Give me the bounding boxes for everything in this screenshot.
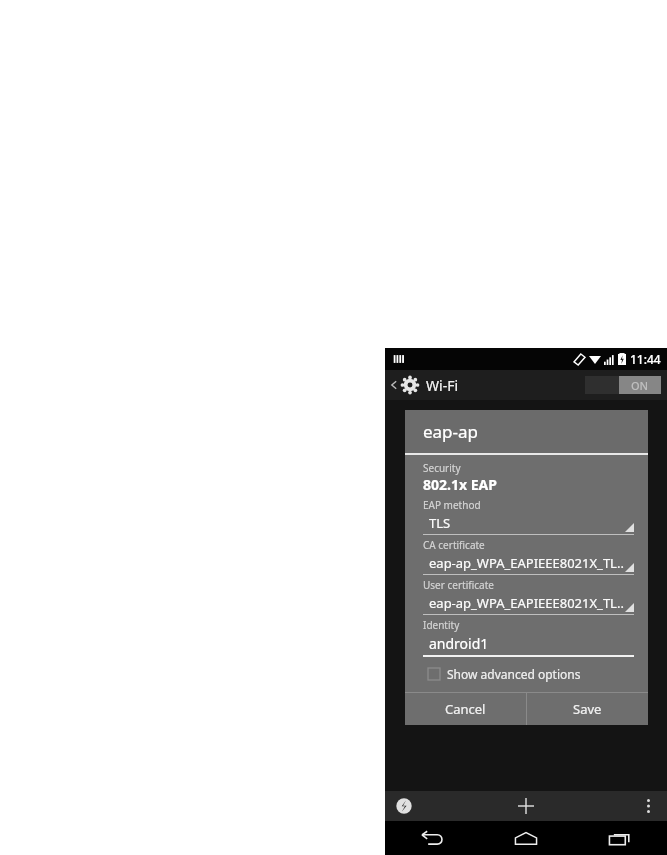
button[interactable]: WPS Push Button [393, 795, 415, 817]
staticText: Wi-Fi [426, 376, 459, 395]
button[interactable]: eap-ap_WPA_EAPIEEE8021X_TL.. [423, 552, 634, 578]
staticText: Show advanced options [447, 666, 581, 682]
button[interactable]: Add network [513, 793, 539, 819]
button[interactable]: More options [637, 795, 659, 817]
staticText: Cancel [445, 700, 486, 718]
staticText: eap-ap [423, 420, 479, 443]
staticText: EAP method [423, 498, 481, 512]
staticText: Save [573, 700, 602, 718]
staticText: Security [423, 461, 461, 475]
staticText: TLS [429, 514, 625, 532]
button[interactable]: eap-ap_WPA_EAPIEEE8021X_TL.. [423, 592, 634, 618]
button[interactable]: TLS [423, 512, 634, 538]
button[interactable]: Show advanced options [423, 666, 634, 682]
staticText: Identity [423, 618, 460, 632]
staticText: CA certificate [423, 538, 485, 552]
button[interactable]: ON [585, 376, 661, 394]
staticText: android1 [429, 634, 489, 653]
button[interactable]: Cancel [405, 693, 526, 725]
button[interactable]: Recent apps [573, 821, 667, 855]
button[interactable]: Home [479, 821, 573, 855]
button[interactable]: Back to settings [389, 375, 459, 395]
staticText: eap-ap_WPA_EAPIEEE8021X_TL.. [429, 594, 625, 612]
staticText: 11:44 [630, 351, 661, 367]
staticText: ON [631, 378, 649, 393]
button[interactable]: Save [527, 693, 648, 725]
staticText: User certificate [423, 578, 494, 592]
button[interactable]: Back [385, 821, 479, 855]
staticText: 802.1x EAP [423, 475, 497, 494]
staticText: eap-ap_WPA_EAPIEEE8021X_TL.. [429, 554, 625, 572]
button[interactable]: android1 [423, 632, 634, 657]
